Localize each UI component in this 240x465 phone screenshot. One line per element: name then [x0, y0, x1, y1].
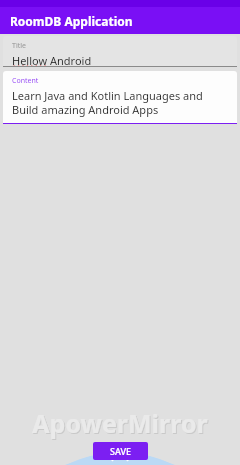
staticText: RoomDB Application [10, 13, 133, 29]
staticText: Title [12, 41, 26, 51]
staticText: Hellow Android [12, 53, 92, 67]
staticText: ApowerMirror [1, 407, 240, 441]
staticText: ApowerMirror [0, 406, 240, 440]
button[interactable]: Content [3, 71, 237, 124]
button[interactable]: Save [93, 442, 148, 460]
staticText: Content [12, 76, 39, 86]
button[interactable]: Title [3, 36, 237, 67]
staticText: Learn Java and Kotlin Languages and Buil… [12, 88, 231, 117]
staticText: SAVE [110, 445, 132, 457]
